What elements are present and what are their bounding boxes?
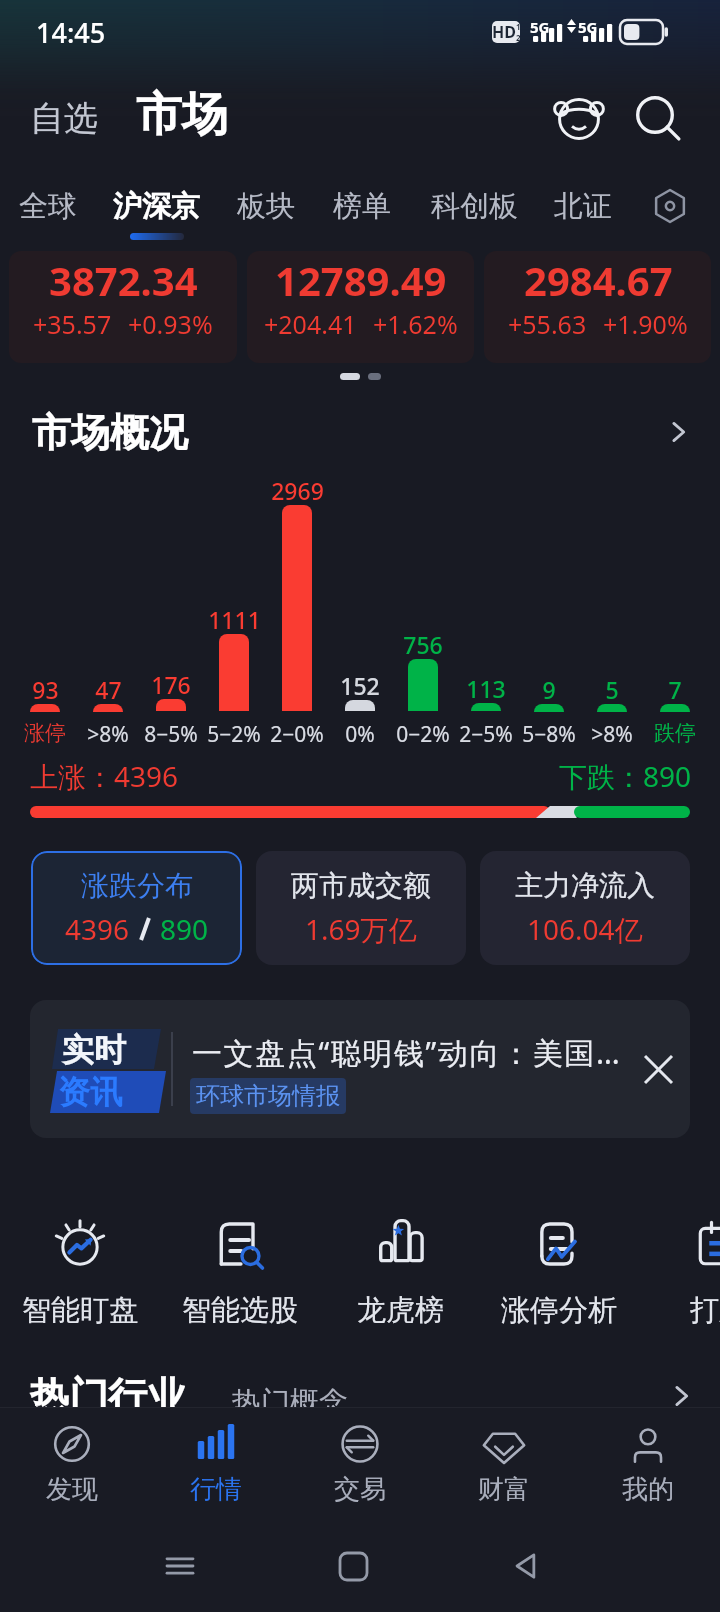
staticText: 3872.34 [49,253,198,307]
staticText: 756 [403,629,443,660]
button[interactable]: Profile [548,86,610,148]
staticText: 93 [32,674,59,705]
staticText: 沪深京 [113,188,200,225]
staticText: 打新 [690,1292,720,1329]
staticText: 一文盘点“聪明钱”动向：美国… [192,1032,622,1073]
staticText: 890 [160,910,209,948]
button[interactable]: 榜单 [328,188,396,246]
staticText: +1.90% [603,307,688,341]
staticText: 热门行业 [30,1372,186,1421]
staticText: 上涨：4396 [30,757,179,795]
staticText: 科创板 [431,188,518,225]
staticText: 智能盯盘 [22,1292,138,1329]
button[interactable]: 涨跌分布 [31,851,242,965]
staticText: +35.57 [33,307,112,341]
staticText: 发现 [46,1473,98,1506]
staticText: +204.41 [264,307,357,341]
staticText: 市场 [136,86,228,144]
staticText: 2969 [271,475,324,506]
button[interactable]: 交易 [288,1408,432,1520]
button[interactable]: More [654,408,702,456]
button[interactable]: 沪深京 [107,188,205,246]
staticText: 两市成交额 [291,868,431,903]
button[interactable]: Home [329,1542,377,1590]
button[interactable]: 涨停分析 [479,1198,639,1338]
button[interactable]: 市场 [132,84,232,146]
button[interactable]: 市场概况 [28,404,192,461]
staticText: 自选 [30,97,98,140]
staticText: 资讯 [58,1072,122,1112]
button[interactable]: 行情 [144,1408,288,1520]
staticText: 下跌：890 [559,757,692,795]
staticText: 5 [605,674,619,705]
button[interactable]: Search [626,86,688,148]
staticText: 8−5% [144,720,198,749]
button[interactable]: 我的 [576,1408,720,1520]
staticText: HD [492,21,516,43]
button[interactable]: 北证 [549,188,617,246]
button[interactable]: 实时 [30,1000,690,1138]
staticText: 环球市场情报 [196,1081,340,1111]
button[interactable]: 3872.34 [9,251,237,363]
staticText: 152 [340,670,380,701]
staticText: 涨停分析 [501,1292,617,1329]
staticText: 14:45 [36,14,106,51]
staticText: 1.69万亿 [305,910,417,948]
button[interactable]: Recents [156,1542,204,1590]
staticText: 主力净流入 [515,868,655,903]
staticText: 板块 [237,188,295,225]
staticText: 0−2% [396,720,450,749]
button[interactable]: 主力净流入 [480,851,690,965]
staticText: 9 [542,674,556,705]
button[interactable]: 12789.49 [247,251,474,363]
staticText: 47 [95,674,122,705]
staticText: 5−2% [207,720,261,749]
staticText: 全球 [19,188,77,225]
staticText: +55.63 [508,307,587,341]
button[interactable]: 科创板 [425,188,523,246]
staticText: 实时 [62,1030,126,1070]
staticText: 我的 [622,1473,674,1506]
button[interactable]: 龙虎榜 [320,1198,480,1338]
button[interactable]: 板块 [232,188,300,246]
staticText: 龙虎榜 [357,1292,444,1329]
button[interactable]: 智能选股 [160,1198,320,1338]
staticText: 行情 [190,1473,242,1506]
staticText: 5−8% [522,720,576,749]
staticText: 1 [516,21,520,32]
staticText: 财富 [478,1473,530,1506]
staticText: >8% [87,720,129,749]
staticText: 12789.49 [275,253,447,307]
button[interactable]: 智能盯盘 [0,1198,160,1338]
staticText: 4396 [65,910,130,948]
staticText: 1111 [208,604,261,635]
button[interactable]: 自选 [26,91,102,146]
button[interactable]: Close [632,1043,684,1095]
staticText: 7 [668,674,682,705]
staticText: 热门概念 [232,1384,348,1421]
button[interactable]: 打新 [639,1198,720,1338]
staticText: 涨跌分布 [81,868,193,903]
staticText: 0% [345,720,375,749]
staticText: 2984.67 [524,253,673,307]
staticText: 交易 [334,1473,386,1506]
staticText: 176 [151,669,191,700]
staticText: 5G [578,17,598,37]
button[interactable]: 2984.67 [484,251,711,363]
button[interactable]: Back [502,1542,550,1590]
button[interactable]: 全球 [14,188,82,246]
staticText: +0.93% [128,307,213,341]
button[interactable]: 发现 [0,1408,144,1520]
staticText: 5G [530,17,550,37]
button[interactable]: 财富 [432,1408,576,1520]
staticText: 跌停 [654,720,696,746]
staticText: 2−5% [459,720,513,749]
staticText: 市场概况 [32,408,188,457]
staticText: 榜单 [333,188,391,225]
staticText: 113 [466,673,506,704]
button[interactable]: 两市成交额 [256,851,466,965]
staticText: 2 [516,32,520,43]
button[interactable]: Settings [646,182,694,230]
staticText: 智能选股 [182,1292,298,1329]
staticText: >8% [591,720,633,749]
